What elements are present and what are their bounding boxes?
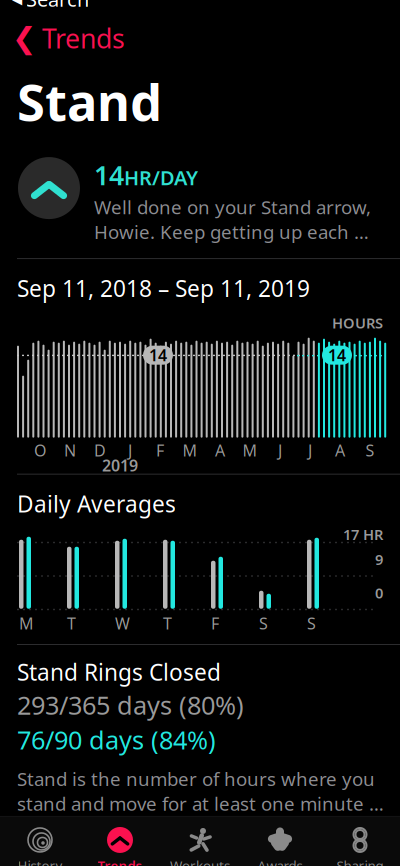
staticText: Sep 11, 2018 – Sep 11, 2019 bbox=[17, 273, 310, 303]
staticText: M bbox=[182, 440, 197, 461]
button[interactable]: Trends bbox=[80, 820, 160, 866]
staticText: 14 bbox=[328, 344, 346, 366]
staticText: F bbox=[211, 613, 219, 634]
staticText: T bbox=[67, 613, 76, 634]
staticText: S bbox=[307, 613, 316, 634]
staticText: 14 bbox=[149, 344, 167, 366]
staticText: HOURS bbox=[332, 313, 383, 333]
staticText: S bbox=[365, 440, 374, 461]
staticText: 2019 bbox=[102, 455, 138, 476]
staticText: Trends bbox=[97, 856, 142, 866]
staticText: S bbox=[259, 613, 268, 634]
staticText: 0 bbox=[375, 583, 383, 602]
button[interactable]: Sharing bbox=[320, 820, 400, 866]
staticText: J bbox=[128, 440, 132, 461]
staticText: F bbox=[156, 440, 164, 461]
staticText: 293/365 days (80%) bbox=[17, 688, 244, 722]
staticText: 9 bbox=[375, 549, 383, 569]
button[interactable]: Awards bbox=[240, 820, 320, 866]
staticText: ◀ bbox=[12, 0, 22, 7]
staticText: HR/DAY bbox=[124, 164, 198, 191]
staticText: Search bbox=[26, 0, 89, 12]
button[interactable]: ❮ bbox=[0, 12, 400, 56]
staticText: T bbox=[163, 613, 172, 634]
staticText: Awards bbox=[257, 856, 302, 866]
staticText: 76/90 days (84%) bbox=[17, 723, 216, 756]
staticText: J bbox=[278, 440, 282, 461]
staticText: A bbox=[335, 440, 345, 461]
staticText: Daily Averages bbox=[17, 489, 176, 519]
staticText: Sharing bbox=[336, 856, 383, 866]
staticText: D bbox=[94, 440, 106, 461]
staticText: O bbox=[34, 440, 46, 461]
staticText: ❮ bbox=[12, 21, 37, 55]
staticText: A bbox=[215, 440, 225, 461]
button[interactable]: History bbox=[0, 820, 80, 866]
button[interactable]: Workouts bbox=[160, 820, 240, 866]
staticText: N bbox=[64, 440, 76, 461]
staticText: Trends bbox=[42, 20, 125, 56]
staticText: M bbox=[242, 440, 257, 461]
staticText: M bbox=[19, 613, 34, 634]
staticText: Workouts bbox=[170, 856, 230, 866]
button[interactable]: ◀ bbox=[0, 0, 400, 12]
staticText: Stand is the number of hours where you s… bbox=[17, 766, 386, 816]
staticText: W bbox=[115, 613, 130, 634]
staticText: J bbox=[308, 440, 312, 461]
staticText: Stand bbox=[17, 68, 162, 135]
staticText: Well done on your Stand arrow, Howie. Ke… bbox=[94, 194, 374, 244]
staticText: 17 HR bbox=[343, 524, 383, 544]
staticText: Stand Rings Closed bbox=[17, 657, 221, 687]
staticText: History bbox=[17, 856, 62, 866]
staticText: 14 bbox=[94, 157, 124, 192]
